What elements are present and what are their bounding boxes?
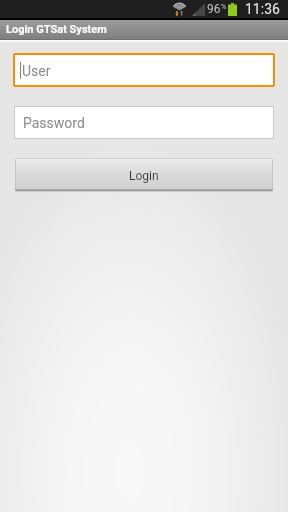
other: Battery [228,3,237,16]
other: Signal [192,3,205,16]
button[interactable]: Login [15,158,273,192]
button[interactable]: Password [14,106,274,139]
button[interactable]: User [13,53,275,87]
staticText: User [22,63,51,79]
staticText: Login [129,169,159,183]
other: Wi-Fi [172,1,187,17]
staticText: Login GTSat System [6,23,107,36]
staticText: 96 [207,2,221,16]
staticText: Password [23,115,85,131]
staticText: % [221,3,227,11]
staticText: 11:36 [245,1,280,17]
